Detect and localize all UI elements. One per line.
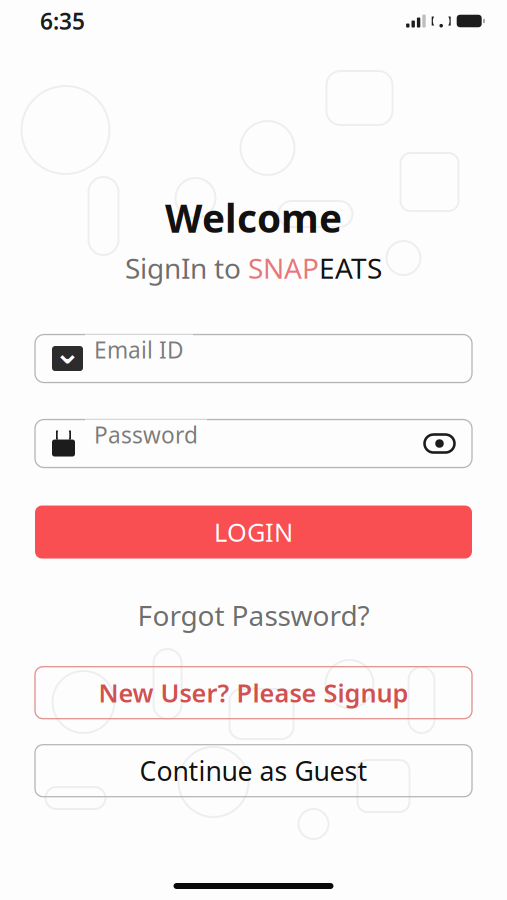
- button[interactable]: Continue as Guest: [0, 745, 507, 797]
- button[interactable]: LOGIN: [0, 505, 507, 558]
- staticText: New User? Please Signup: [98, 676, 408, 709]
- staticText: Continue as Guest: [139, 753, 367, 788]
- staticText: Password: [94, 419, 198, 450]
- staticText: SignIn to: [125, 249, 248, 286]
- staticText: LOGIN: [214, 515, 293, 549]
- staticText: Forgot Password?: [137, 596, 369, 634]
- staticText: EATS: [319, 249, 382, 286]
- button[interactable]: Show password: [0, 419, 507, 467]
- staticText: 6:35: [40, 6, 85, 36]
- button[interactable]: Forgot Password?: [123, 590, 383, 640]
- staticText: Welcome: [165, 192, 342, 243]
- staticText: Email ID: [94, 334, 184, 365]
- staticText: ⌄: [54, 334, 81, 371]
- button[interactable]: New User? Please Signup: [0, 667, 507, 719]
- staticText: SNAP: [248, 249, 319, 286]
